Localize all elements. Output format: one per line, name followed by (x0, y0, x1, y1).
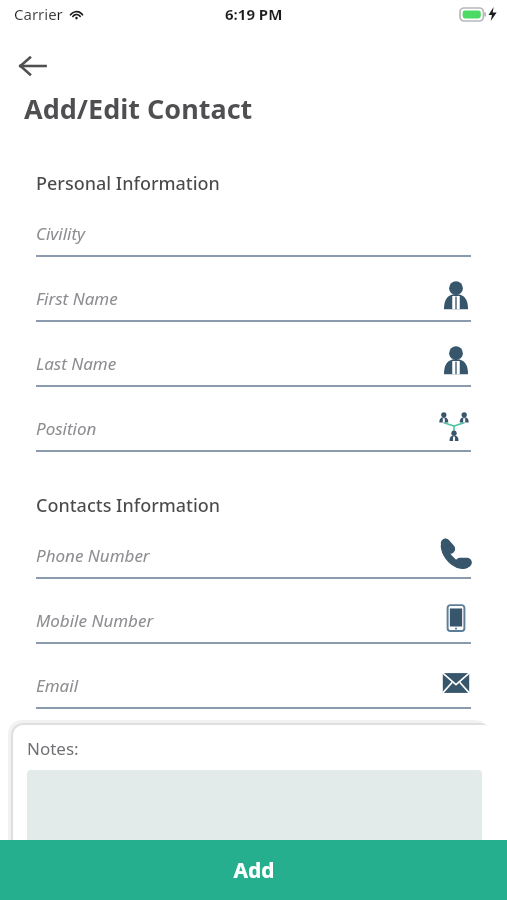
staticText: Contacts Information (36, 493, 221, 518)
staticText: Position (36, 417, 97, 440)
button[interactable]: Phone Number (36, 533, 471, 579)
staticText: Add (233, 856, 275, 885)
staticText: Notes: (27, 737, 79, 760)
staticText: Last Name (36, 352, 117, 375)
staticText: Phone Number (36, 544, 150, 567)
button[interactable]: Last Name (36, 341, 471, 387)
button[interactable]: Mobile Number (36, 598, 471, 644)
staticText: Carrier (14, 4, 63, 24)
staticText: Email (36, 674, 79, 697)
staticText: 6:19 PM (225, 4, 283, 24)
staticText: Civility (36, 222, 86, 245)
button[interactable]: Back (18, 44, 62, 88)
button[interactable]: Add (0, 840, 507, 900)
staticText: First Name (36, 287, 118, 310)
staticText: Add/Edit Contact (24, 90, 253, 127)
staticText: Mobile Number (36, 609, 154, 632)
button[interactable]: Civility (36, 211, 471, 257)
button[interactable]: Position (36, 406, 471, 452)
button[interactable]: Notes: (13, 725, 494, 875)
button[interactable]: Email (36, 663, 471, 709)
staticText: Personal Information (36, 171, 220, 196)
button[interactable]: First Name (36, 276, 471, 322)
